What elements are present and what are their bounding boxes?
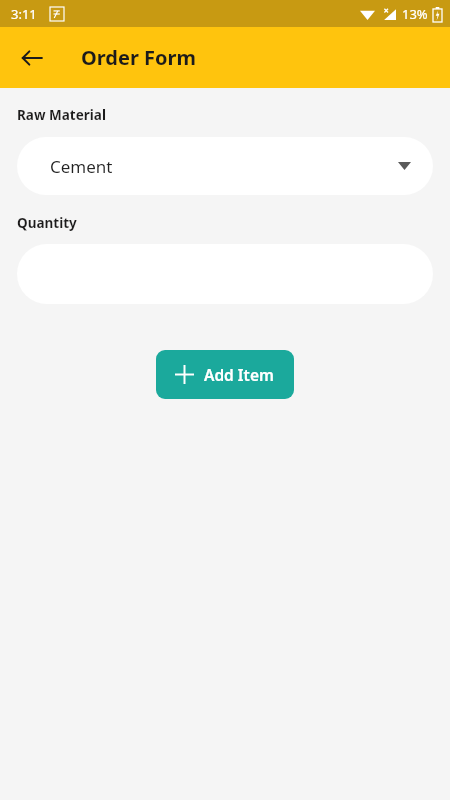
staticText: Raw Material	[17, 106, 106, 124]
button[interactable]: Cement	[17, 137, 433, 195]
staticText: Quantity	[17, 214, 77, 232]
button[interactable]: Back	[13, 39, 51, 77]
staticText: Add Item	[204, 364, 274, 385]
staticText: Order Form	[81, 44, 196, 71]
staticText: Cement	[50, 155, 113, 178]
staticText: 3:11	[11, 5, 37, 23]
button[interactable]: Add Item	[156, 350, 294, 399]
staticText: 13%	[402, 5, 428, 23]
